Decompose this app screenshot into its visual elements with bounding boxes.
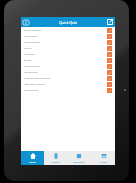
staticText: Rescue: [24, 59, 101, 62]
button[interactable]: Dive planning: [21, 87, 115, 93]
staticText: Bookmark: [73, 160, 85, 163]
button[interactable]: Start quiz: [107, 88, 112, 93]
button[interactable]: Dive equipment: [21, 39, 115, 45]
staticText: Physiology: [24, 53, 101, 56]
staticText: Open water training: [24, 83, 101, 86]
staticText: E-card: [100, 160, 107, 163]
button[interactable]: Open in new window: [106, 18, 114, 26]
button[interactable]: Physics: [21, 45, 115, 51]
staticText: Dive equipment: [24, 41, 101, 44]
button[interactable]: Open water training: [21, 81, 115, 87]
button[interactable]: Start quiz: [107, 82, 112, 87]
button[interactable]: Start quiz: [107, 70, 112, 75]
button[interactable]: Environment: [21, 33, 115, 39]
staticText: Environment: [24, 35, 101, 38]
button[interactable]: Decompression: [21, 63, 115, 69]
button[interactable]: Navigation drawer: [22, 18, 30, 26]
staticText: Decompression: [24, 65, 101, 68]
button[interactable]: Start quiz: [107, 46, 112, 51]
button[interactable]: Start quiz: [107, 52, 112, 57]
staticText: Quick Quiz: [59, 20, 78, 25]
button[interactable]: Start quiz: [107, 58, 112, 63]
button[interactable]: Start quiz: [107, 28, 112, 33]
button[interactable]: Start quiz: [107, 76, 112, 81]
staticText: Diving in general: [24, 29, 101, 32]
staticText: Physics: [24, 47, 101, 50]
button[interactable]: Bookmark: [67, 151, 91, 165]
button[interactable]: Upload: [44, 151, 67, 165]
button[interactable]: Confined water essentials: [21, 75, 115, 81]
button[interactable]: Management: [21, 69, 115, 75]
button[interactable]: E-card: [91, 151, 115, 165]
staticText: Home: [29, 160, 36, 163]
button[interactable]: Start quiz: [107, 34, 112, 39]
button[interactable]: Rescue: [21, 57, 115, 63]
button[interactable]: Home: [21, 151, 44, 165]
button[interactable]: Physiology: [21, 51, 115, 57]
staticText: Dive planning: [24, 89, 101, 92]
button[interactable]: Start quiz: [107, 40, 112, 45]
staticText: Management: [24, 71, 101, 74]
button[interactable]: Diving in general: [21, 27, 115, 33]
button[interactable]: Start quiz: [107, 64, 112, 69]
staticText: Upload: [51, 160, 60, 163]
staticText: Confined water essentials: [24, 77, 101, 80]
